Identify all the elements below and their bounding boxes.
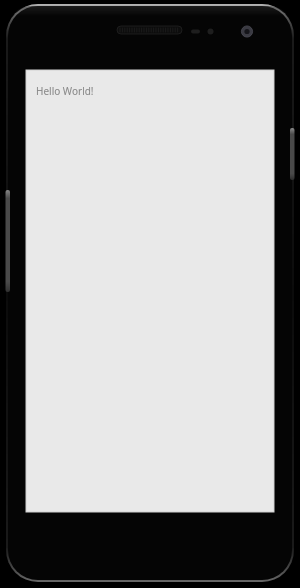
staticText: Hello World! [36, 84, 94, 98]
